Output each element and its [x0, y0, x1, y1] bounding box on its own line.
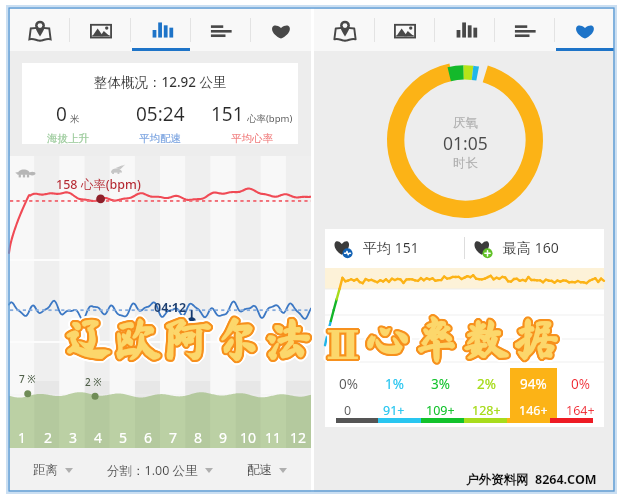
staticText: 心率数据 — [363, 312, 563, 359]
staticText: 心率数据 — [362, 317, 562, 364]
staticText: 辽欧阿尔法 — [66, 315, 316, 362]
staticText: 心率数据 — [363, 313, 563, 360]
button[interactable]: Charts — [435, 8, 495, 51]
staticText: 辽欧阿尔法 — [64, 318, 314, 365]
staticText: 户外资料网 8264.COM — [466, 471, 597, 488]
staticText: 心率数据 — [360, 318, 560, 365]
staticText: 心率数据 — [364, 317, 564, 364]
button[interactable]: 0% — [557, 365, 604, 427]
staticText: 辽欧阿尔法 — [66, 317, 316, 364]
staticText: 心率数据 — [363, 317, 563, 364]
staticText: Ⅱ — [323, 320, 357, 367]
staticText: Ⅱ — [327, 320, 361, 367]
staticText: 1% — [385, 375, 404, 393]
button[interactable]: Heart rate — [251, 8, 311, 51]
staticText: Ⅱ — [326, 325, 360, 372]
button[interactable]: 0% — [325, 365, 371, 427]
button[interactable]: Heart rate — [555, 8, 615, 51]
staticText: 心率数据 — [361, 315, 561, 362]
staticText: 辽欧阿尔法 — [63, 316, 313, 363]
staticText: Ⅱ — [327, 325, 361, 372]
staticText: 米 — [70, 113, 80, 125]
staticText: Ⅱ — [328, 324, 362, 371]
staticText: 心率数据 — [361, 315, 561, 362]
staticText: 11 — [265, 428, 282, 447]
staticText: Ⅱ — [325, 319, 359, 366]
staticText: Ⅱ — [328, 319, 362, 366]
staticText: 心率数据 — [363, 316, 563, 363]
staticText: 海拔上升 — [47, 132, 89, 144]
staticText: Ⅱ — [326, 320, 360, 367]
button[interactable]: 平均 151 — [325, 229, 464, 266]
staticText: 心率数据 — [362, 313, 562, 360]
staticText: 心率数据 — [366, 315, 566, 362]
button[interactable]: Splits — [191, 8, 251, 51]
staticText: 辽欧阿尔法 — [62, 316, 312, 363]
staticText: Ⅱ — [327, 318, 361, 365]
staticText: 146+ — [519, 402, 548, 419]
button[interactable]: 3% — [417, 365, 463, 427]
button[interactable]: 最高 160 — [465, 229, 604, 266]
staticText: 心率数据 — [358, 315, 558, 362]
staticText: 心率数据 — [360, 316, 560, 363]
staticText: 心率数据 — [365, 318, 565, 365]
staticText: 辽欧阿尔法 — [64, 314, 314, 361]
staticText: 心率数据 — [360, 315, 560, 362]
staticText: 辽欧阿尔法 — [65, 314, 315, 361]
button[interactable]: 分割：1.00 公里 — [96, 448, 223, 492]
staticText: 94% — [520, 375, 547, 393]
button[interactable]: Map — [9, 8, 70, 51]
staticText: 辽欧阿尔法 — [65, 315, 315, 362]
staticText: 辽欧阿尔法 — [64, 312, 314, 359]
staticText: Ⅱ — [326, 322, 360, 369]
staticText: Ⅱ — [325, 325, 359, 372]
button[interactable]: 距离 — [9, 448, 96, 492]
staticText: Ⅱ — [326, 321, 360, 368]
button[interactable]: Map — [314, 8, 375, 51]
button[interactable]: Charts — [131, 8, 191, 51]
staticText: 辽欧阿尔法 — [65, 315, 315, 362]
staticText: 辽欧阿尔法 — [65, 314, 315, 361]
staticText: Ⅱ — [323, 322, 357, 369]
staticText: 辽欧阿尔法 — [65, 320, 315, 367]
staticText: 心率数据 — [363, 314, 563, 361]
staticText: 辽欧阿尔法 — [66, 319, 316, 366]
staticText: 平均心率 — [231, 132, 273, 144]
button[interactable]: Photos — [375, 8, 435, 51]
staticText: Ⅱ — [325, 322, 359, 369]
staticText: 心率数据 — [364, 316, 564, 363]
staticText: 91+ — [383, 402, 405, 419]
staticText: 04:12 — [154, 299, 187, 316]
staticText: 心率数据 — [366, 316, 566, 363]
staticText: 心率数据 — [361, 320, 561, 367]
staticText: Ⅱ — [327, 322, 361, 369]
staticText: Ⅱ — [329, 322, 363, 369]
staticText: 辽欧阿尔法 — [63, 313, 313, 360]
staticText: 辽欧阿尔法 — [68, 315, 318, 362]
staticText: Ⅱ — [327, 323, 361, 370]
staticText: 辽欧阿尔法 — [62, 319, 312, 366]
staticText: 辽欧阿尔法 — [60, 315, 310, 362]
button[interactable]: Splits — [495, 8, 555, 51]
staticText: 辽欧阿尔法 — [62, 315, 312, 362]
staticText: 心率数据 — [362, 315, 562, 362]
staticText: 心率数据 — [363, 320, 563, 367]
button[interactable]: 2% — [463, 365, 510, 427]
staticText: Ⅱ — [330, 321, 364, 368]
button[interactable]: 94% — [510, 365, 557, 427]
staticText: Ⅱ — [322, 321, 356, 368]
staticText: Ⅱ — [325, 322, 359, 369]
staticText: 辽欧阿尔法 — [66, 316, 316, 363]
staticText: 辽欧阿尔法 — [62, 318, 312, 365]
staticText: Ⅱ — [329, 319, 363, 366]
staticText: 心率数据 — [364, 317, 564, 364]
button[interactable]: 1% — [371, 365, 417, 427]
staticText: 辽欧阿尔法 — [64, 316, 314, 363]
staticText: 心率数据 — [362, 318, 562, 365]
button[interactable]: Photos — [70, 8, 131, 51]
button[interactable]: 配速 — [223, 448, 311, 492]
staticText: 辽欧阿尔法 — [62, 316, 312, 363]
staticText: 7 — [169, 428, 178, 447]
staticText: Ⅱ — [324, 323, 358, 370]
staticText: 辽欧阿尔法 — [65, 319, 315, 366]
